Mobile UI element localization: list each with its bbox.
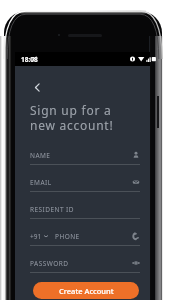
- staticText: RESIDENT ID: [30, 205, 74, 214]
- staticText: EMAIL: [30, 178, 52, 187]
- button[interactable]: +91: [30, 230, 140, 257]
- button[interactable]: RESIDENT ID: [30, 203, 140, 230]
- staticText: PASSWORD: [30, 259, 69, 268]
- staticText: PHONE: [55, 232, 80, 241]
- button[interactable]: NAME: [30, 149, 140, 176]
- staticText: +91: [30, 232, 42, 241]
- button[interactable]: EMAIL: [30, 176, 140, 203]
- staticText: 18:08: [21, 55, 38, 64]
- staticText: Sign up for a new account!: [30, 102, 114, 134]
- button[interactable]: PASSWORD: [30, 257, 140, 282]
- button[interactable]: Back: [30, 80, 44, 94]
- staticText: Create Account: [59, 286, 114, 296]
- staticText: NAME: [30, 151, 51, 160]
- button[interactable]: Create Account: [33, 282, 139, 299]
